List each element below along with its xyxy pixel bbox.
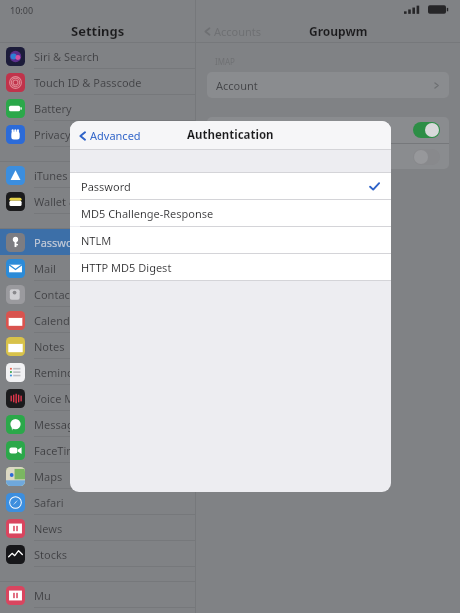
button[interactable]: Messages — [0, 411, 195, 437]
staticText: Mu — [34, 588, 51, 603]
button[interactable]: Siri & Search — [0, 43, 195, 69]
button[interactable]: Privacy — [0, 121, 195, 147]
button[interactable]: Contacts — [0, 281, 195, 307]
staticText: Advanced — [90, 128, 141, 143]
staticText: Authentication — [187, 127, 274, 143]
button[interactable]: Advanced — [76, 125, 143, 146]
button[interactable]: FaceTime — [0, 437, 195, 463]
staticText: Safari — [34, 495, 64, 510]
other: Toggle off — [413, 149, 440, 165]
staticText: Passwords & Accounts — [34, 235, 150, 250]
staticText: Stocks — [34, 547, 68, 562]
staticText: IMAP — [215, 56, 235, 67]
staticText: Mail — [34, 261, 56, 276]
button[interactable]: Stocks — [0, 541, 195, 567]
staticText: Touch ID & Passcode — [34, 75, 142, 90]
button[interactable]: iTunes & App Store — [0, 162, 195, 188]
staticText: Privacy — [34, 127, 71, 142]
staticText: Contacts — [34, 287, 80, 302]
staticText: FaceTime — [34, 443, 83, 458]
button[interactable]: News — [0, 515, 195, 541]
staticText: Messages — [34, 417, 86, 432]
staticText: 10:00 — [10, 4, 34, 16]
staticText: MD5 Challenge-Response — [81, 206, 214, 221]
button[interactable]: Notes — [0, 333, 195, 359]
staticText: Notes — [34, 339, 65, 354]
button[interactable]: HTTP MD5 Digest — [70, 254, 391, 280]
button[interactable]: MD5 Challenge-Response — [70, 200, 391, 226]
button[interactable]: Touch ID & Passcode — [0, 69, 195, 95]
staticText: Battery — [34, 101, 72, 116]
button[interactable]: Mu — [0, 582, 195, 608]
staticText: Wallet & Apple Pay — [34, 194, 131, 209]
button[interactable]: Wallet & Apple Pay — [0, 188, 195, 214]
button[interactable]: NTLM — [70, 227, 391, 253]
staticText: Maps — [34, 469, 63, 484]
button[interactable]: Battery — [0, 95, 195, 121]
staticText: Accounts — [214, 24, 262, 39]
button[interactable]: Account — [207, 72, 449, 98]
button[interactable]: Mail — [0, 255, 195, 281]
button[interactable]: Password — [70, 173, 391, 199]
staticText: Settings — [71, 22, 125, 40]
staticText: HTTP MD5 Digest — [81, 260, 172, 275]
staticText: News — [34, 521, 63, 536]
staticText: Voice Memos — [34, 391, 103, 406]
other: Toggle on — [413, 122, 440, 138]
button[interactable]: Accounts — [201, 22, 264, 41]
staticText: NTLM — [81, 233, 112, 248]
staticText: Reminders — [34, 365, 90, 380]
button[interactable]: Calendar — [0, 307, 195, 333]
staticText: Password — [81, 179, 131, 194]
button[interactable]: Safari — [0, 489, 195, 515]
button[interactable]: Voice Memos — [0, 385, 195, 411]
staticText: iTunes & App Store — [34, 168, 132, 183]
button[interactable]: Passwords & Accounts — [0, 229, 195, 255]
staticText: Account — [216, 78, 258, 93]
staticText: Calendar — [34, 313, 81, 328]
button[interactable]: Maps — [0, 463, 195, 489]
staticText: Siri & Search — [34, 49, 99, 64]
staticText: Groupwm — [309, 23, 368, 39]
button[interactable]: Toggle on — [207, 117, 449, 143]
button[interactable]: Toggle off — [207, 144, 449, 169]
button[interactable]: Reminders — [0, 359, 195, 385]
